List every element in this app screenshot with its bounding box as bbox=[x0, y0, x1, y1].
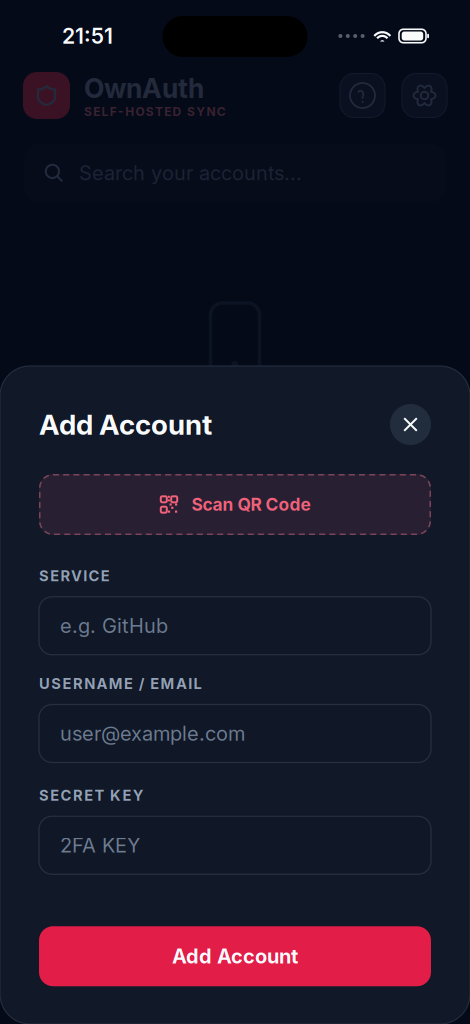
button[interactable]: Scan QR Code bbox=[39, 474, 431, 535]
staticText: e.g. GitHub bbox=[60, 614, 168, 638]
button[interactable]: Settings bbox=[385, 73, 447, 117]
staticText: user@example.com bbox=[60, 721, 245, 746]
staticText: Add Account bbox=[39, 408, 212, 441]
staticText: SERVICE bbox=[39, 567, 110, 585]
staticText: Add Account bbox=[172, 944, 298, 968]
button[interactable]: Close bbox=[390, 404, 431, 445]
staticText: SECRET KEY bbox=[39, 786, 144, 804]
staticText: Scan QR Code bbox=[191, 494, 310, 515]
button[interactable]: Add Account bbox=[39, 926, 431, 986]
staticText: OwnAuth bbox=[84, 72, 204, 104]
staticText: SELF-HOSTED SYNC bbox=[84, 104, 226, 119]
staticText: 21:51 bbox=[62, 23, 113, 49]
staticText: USERNAME / EMAIL bbox=[39, 675, 201, 692]
staticText: 2FA KEY bbox=[60, 833, 141, 857]
button[interactable]: Search your accounts... bbox=[0, 144, 470, 202]
staticText: Search your accounts... bbox=[79, 161, 302, 185]
button[interactable]: Help bbox=[340, 73, 385, 117]
